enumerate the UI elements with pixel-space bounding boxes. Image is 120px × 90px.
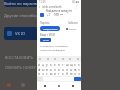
button[interactable]: VK ID xyxy=(4,27,38,40)
button[interactable]: с xyxy=(45,71,49,76)
staticText: 4G ▮▮ xyxy=(72,0,79,4)
button[interactable]: App icon xyxy=(21,83,25,87)
staticText: 12:05 xyxy=(39,0,46,4)
staticText: о xyxy=(62,68,64,72)
button[interactable]: р xyxy=(57,67,61,72)
button[interactable]: Войти по паролю xyxy=(4,0,38,7)
staticText: Я согласен с условиями xyxy=(40,44,68,47)
staticText: х xyxy=(78,63,80,67)
button[interactable]: Продолжить xyxy=(40,26,60,31)
staticText: СМЕНИТЬ НОМЕР xyxy=(5,65,36,70)
button[interactable]: ф xyxy=(37,67,41,72)
staticText: ч xyxy=(78,72,80,76)
staticText: е xyxy=(54,63,56,67)
staticText: Продолжить xyxy=(43,27,58,30)
button[interactable]: з xyxy=(73,62,77,67)
button[interactable]: у xyxy=(45,62,49,67)
button[interactable]: щ xyxy=(69,62,73,67)
button[interactable]: т xyxy=(57,71,61,76)
staticText: id.vk.com/auth xyxy=(42,5,62,9)
staticText: ы xyxy=(42,68,45,72)
button[interactable]: э xyxy=(77,67,81,72)
staticText: VK ID xyxy=(15,31,26,36)
staticText: 999 ••• xyxy=(54,13,63,17)
staticText: ч xyxy=(42,72,44,76)
staticText: Вход с VK ID xyxy=(40,33,56,37)
staticText: ф xyxy=(38,68,41,72)
button[interactable]: л xyxy=(65,67,69,72)
button[interactable]: й xyxy=(37,62,41,67)
button[interactable]: ш xyxy=(65,62,69,67)
button[interactable]: я xyxy=(37,71,41,76)
button[interactable]: б xyxy=(65,71,69,76)
button[interactable]: Enter xyxy=(74,77,81,81)
staticText: э xyxy=(78,68,80,72)
staticText: Другие способы xyxy=(4,13,37,19)
button[interactable]: е xyxy=(53,62,57,67)
staticText: у xyxy=(46,63,48,67)
button[interactable]: ч xyxy=(41,71,45,76)
staticText: ВОССТАНОВИТЬ xyxy=(5,55,34,60)
button[interactable]: ч xyxy=(77,71,81,76)
button[interactable]: п xyxy=(53,67,57,72)
staticText: р xyxy=(58,68,60,72)
button[interactable]: VK ID xyxy=(40,38,51,42)
button[interactable]: App icon xyxy=(7,83,11,87)
staticText: я xyxy=(38,72,40,76)
staticText: й xyxy=(38,63,40,67)
button[interactable]: ц xyxy=(41,62,45,67)
button[interactable]: м xyxy=(49,71,53,76)
staticText: д xyxy=(70,68,72,72)
button[interactable]: г xyxy=(61,62,65,67)
button[interactable]: х xyxy=(77,62,81,67)
staticText: т xyxy=(58,72,60,76)
button[interactable]: н xyxy=(57,62,61,67)
staticText: с xyxy=(46,72,48,76)
staticText: Политика конфиденц. xyxy=(40,48,66,51)
button[interactable]: д xyxy=(69,67,73,72)
staticText: VK ID xyxy=(43,39,49,42)
button[interactable]: ь xyxy=(61,71,65,76)
staticText: Войдите в аккаунт xyxy=(46,9,72,13)
staticText: ю xyxy=(70,72,73,76)
staticText: ж xyxy=(74,68,77,72)
button[interactable]: ю xyxy=(69,71,73,76)
button[interactable]: ы xyxy=(41,67,45,72)
staticText: щ xyxy=(70,63,73,67)
staticText: ш xyxy=(66,63,69,67)
button[interactable]: я xyxy=(73,71,77,76)
button[interactable]: в xyxy=(45,67,49,72)
button[interactable]: а xyxy=(49,67,53,72)
staticText: я xyxy=(74,72,76,76)
staticText: ц xyxy=(42,63,44,67)
staticText: Забыли xyxy=(68,21,78,25)
staticText: Войти по паролю xyxy=(4,1,38,6)
staticText: Пароль xyxy=(40,21,50,25)
staticText: н xyxy=(58,63,60,67)
staticText: в xyxy=(46,68,48,72)
staticText: п xyxy=(54,68,56,72)
staticText: а xyxy=(50,68,52,72)
staticText: б xyxy=(66,72,68,76)
staticText: +7 xyxy=(47,13,51,17)
button[interactable]: о xyxy=(61,67,65,72)
staticText: ь xyxy=(62,72,64,76)
staticText: и xyxy=(54,72,56,76)
button[interactable]: ж xyxy=(73,67,77,72)
button[interactable]: и xyxy=(53,71,57,76)
button[interactable]: к xyxy=(49,62,53,67)
staticText: г xyxy=(62,63,64,67)
